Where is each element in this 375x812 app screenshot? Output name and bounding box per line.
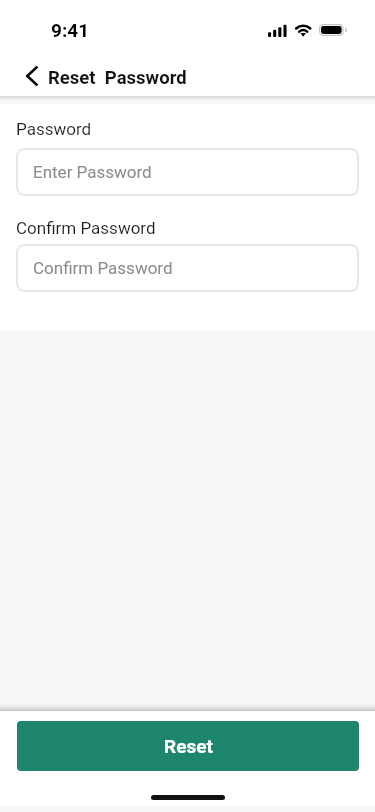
staticText: 9:41 [51, 19, 90, 41]
button[interactable]: Reset [17, 721, 359, 771]
staticText: Reset Password [48, 67, 187, 89]
staticText: Confirm Password [33, 258, 173, 278]
staticText: Enter Password [33, 162, 152, 182]
staticText: Confirm Password [16, 218, 156, 238]
staticText: Password [16, 119, 92, 139]
button[interactable]: Confirm Password [16, 244, 359, 292]
button[interactable]: Back [10, 55, 53, 96]
staticText: Reset [164, 735, 213, 757]
button[interactable]: Enter Password [16, 148, 359, 196]
